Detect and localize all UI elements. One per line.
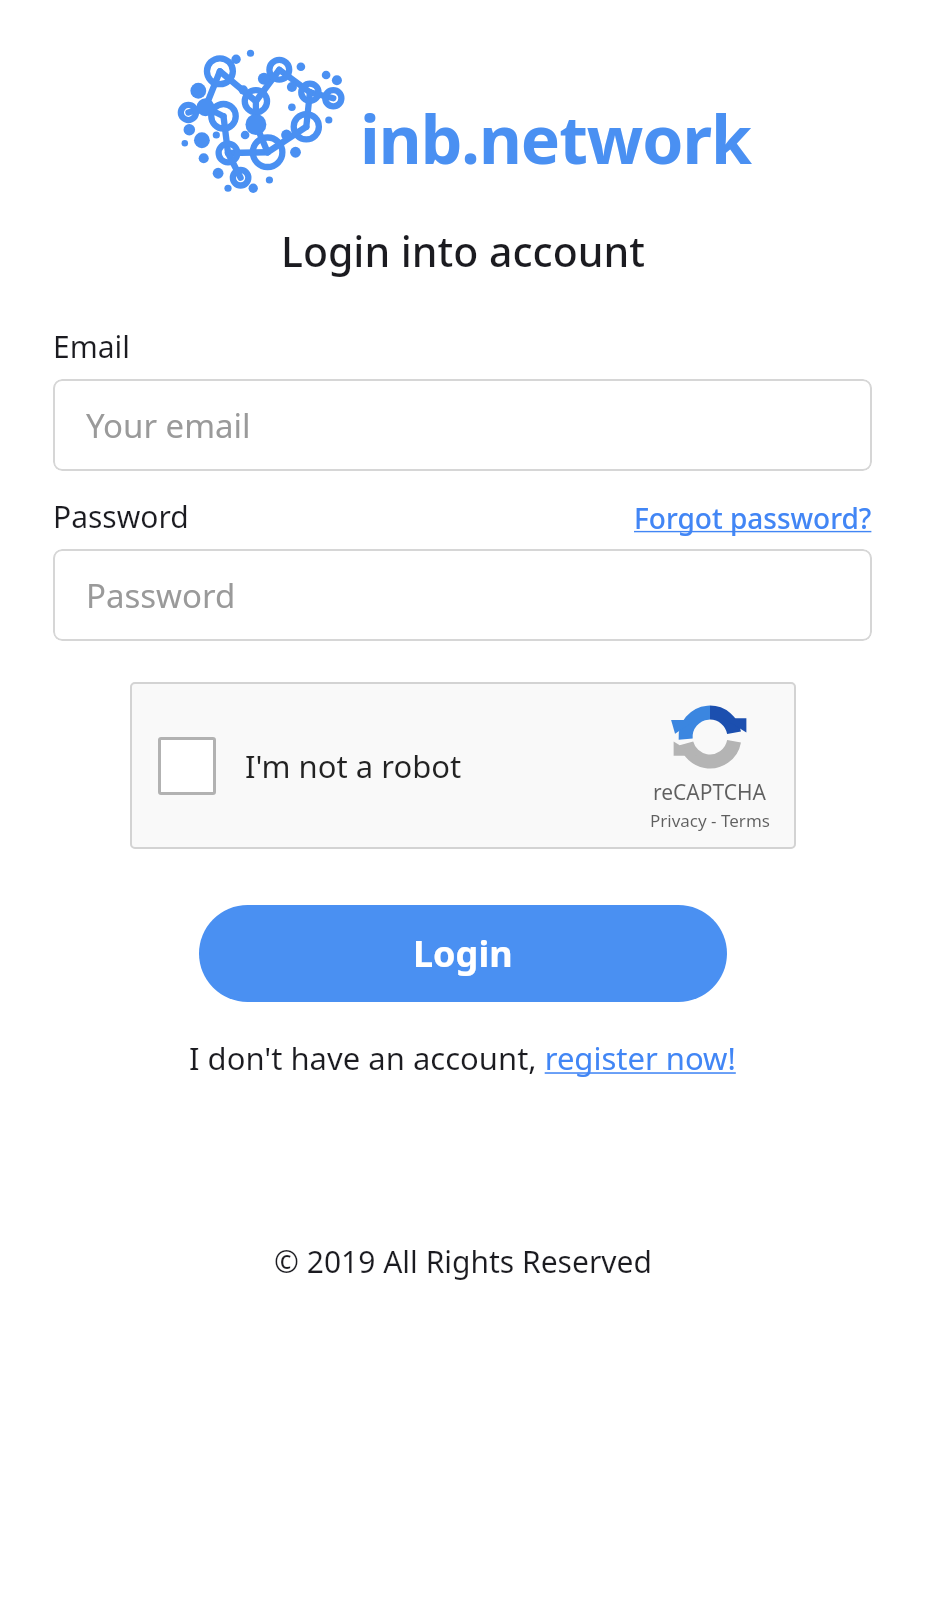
button[interactable]: Login: [199, 905, 727, 1002]
staticText: Login: [413, 929, 513, 978]
staticText: Forgot password?: [634, 499, 872, 537]
staticText: Login into account: [281, 223, 645, 279]
staticText: © 2019 All Rights Reserved: [274, 1241, 652, 1282]
staticText: Privacy - Terms: [650, 809, 770, 832]
staticText: Your email: [86, 403, 251, 448]
button[interactable]: Password: [53, 549, 872, 641]
staticText: I'm not a robot: [245, 745, 462, 787]
staticText: Password: [86, 573, 236, 618]
button[interactable]: I'm not a robot checkbox: [158, 737, 216, 795]
button[interactable]: I don't have an account, register now!: [0, 1037, 925, 1079]
staticText: inb.network: [360, 93, 752, 183]
button[interactable]: Your email: [53, 379, 872, 471]
staticText: Password: [53, 496, 189, 537]
staticText: I don't have an account, register now!: [189, 1037, 736, 1079]
staticText: Email: [53, 326, 131, 367]
button[interactable]: Forgot password?: [634, 499, 872, 537]
staticText: reCAPTCHA: [653, 778, 767, 807]
